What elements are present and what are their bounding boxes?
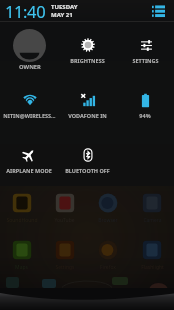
button[interactable]: Camera	[130, 193, 174, 224]
button[interactable]: BRIGHTNESS	[58, 22, 116, 77]
button[interactable]: NITIN@WIRELESS...	[0, 77, 58, 132]
button[interactable]: Browser	[86, 193, 130, 224]
button[interactable]: SETTINGS	[116, 22, 174, 77]
staticText: Browser	[98, 217, 118, 224]
staticText: VODAFONE IN	[68, 112, 107, 119]
staticText: 11:40	[5, 0, 46, 21]
button[interactable]: SoundHound	[0, 193, 43, 224]
staticText: TUESDAY	[51, 3, 78, 11]
button[interactable]: AIRPLANE MODE	[0, 132, 58, 186]
button[interactable]: Flashlight	[130, 240, 174, 271]
button[interactable]: VODAFONE IN	[58, 77, 116, 132]
staticText: MAY 21	[51, 11, 73, 19]
staticText: Camera	[143, 217, 162, 224]
button[interactable]: YouTube	[43, 193, 86, 224]
staticText: AIRPLANE MODE	[6, 167, 52, 174]
button[interactable]: Maps	[0, 240, 43, 271]
staticText: BRIGHTNESS	[70, 57, 105, 64]
staticText: NITIN@WIRELESS...	[3, 112, 56, 119]
staticText: OWNER	[19, 63, 41, 71]
staticText: SETTINGS	[132, 57, 159, 64]
button[interactable]: Settings	[43, 240, 86, 271]
staticText: 94%	[139, 112, 151, 119]
button[interactable]: BLUETOOTH OFF	[58, 132, 116, 186]
button[interactable]: 94%	[116, 77, 174, 132]
button[interactable]: Quick settings	[149, 2, 167, 20]
staticText: Flashlight	[141, 264, 164, 271]
staticText: Maps	[15, 264, 28, 271]
button[interactable]: Firefox	[86, 240, 130, 271]
button[interactable]: OWNER	[0, 22, 58, 77]
staticText: BLUETOOTH OFF	[65, 167, 110, 174]
